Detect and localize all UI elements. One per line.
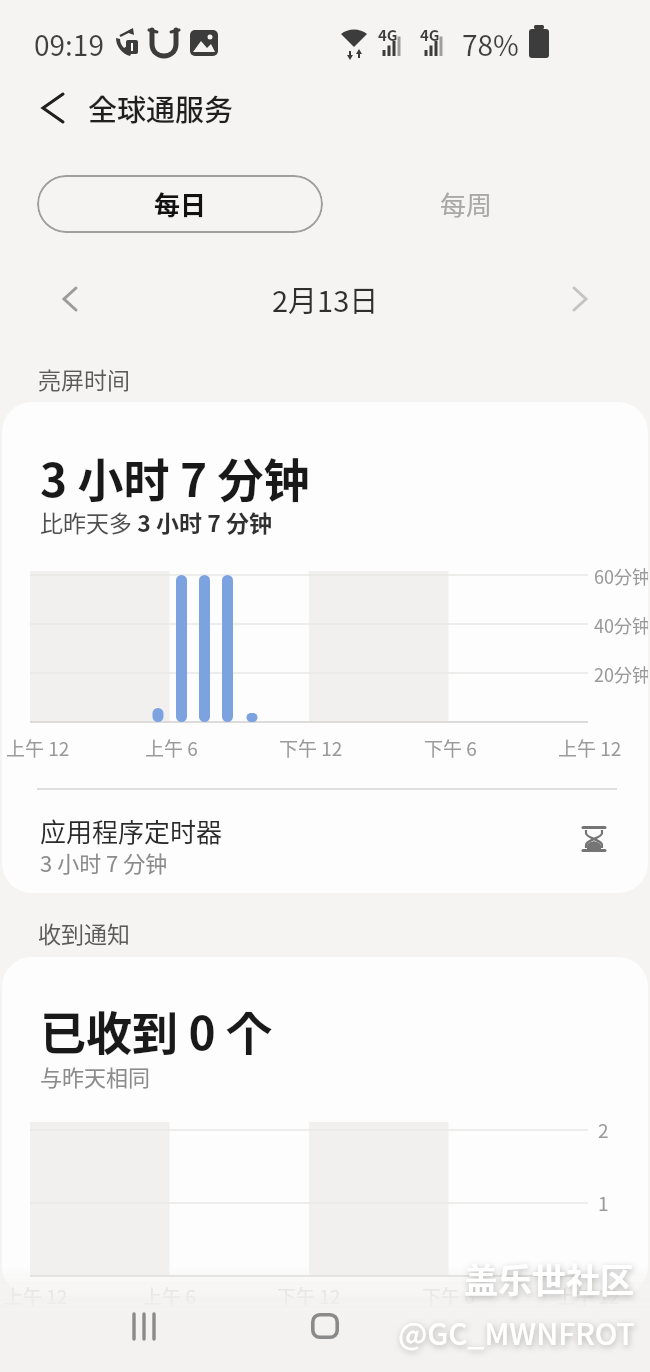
staticText: @GC_MWNFROT xyxy=(398,1310,635,1353)
button[interactable]: 每周 xyxy=(323,175,609,233)
staticText: 收到通知 xyxy=(38,916,130,949)
button[interactable] xyxy=(289,1294,361,1358)
staticText: 20分钟 xyxy=(594,661,648,687)
button[interactable]: 每日 xyxy=(37,175,323,233)
staticText: 每日 xyxy=(154,185,207,223)
staticText: 1 xyxy=(598,1189,609,1217)
staticText: 2月13日 xyxy=(272,278,379,320)
staticText: 亮屏时间 xyxy=(38,362,130,395)
staticText: 上午 12 xyxy=(4,1282,68,1310)
staticText: 下午 12 xyxy=(277,1282,341,1310)
button[interactable] xyxy=(469,1294,541,1358)
staticText: 下午 6 xyxy=(424,734,477,762)
staticText: 2 xyxy=(598,1116,609,1144)
staticText: 全球通服务 xyxy=(88,87,234,129)
staticText: 上午 6 xyxy=(145,734,198,762)
staticText: 下午 6 xyxy=(422,1282,475,1310)
staticText: 4G xyxy=(420,24,440,46)
staticText: 与昨天相同 xyxy=(40,1060,151,1092)
staticText: 78% xyxy=(462,24,519,65)
staticText: 上午 12 xyxy=(558,734,622,762)
staticText: 盖乐世社区 xyxy=(464,1254,634,1303)
button[interactable]: 应用程序定时器 xyxy=(2,790,648,893)
button[interactable] xyxy=(48,277,92,321)
staticText: 已收到 0 个 xyxy=(40,997,273,1064)
staticText: 3 小时 7 分钟 xyxy=(40,444,310,511)
staticText: 40分钟 xyxy=(594,612,648,638)
staticText: 09:19 xyxy=(34,24,104,65)
staticText: 4G xyxy=(378,24,398,46)
staticText: 上午 12 xyxy=(556,1282,620,1310)
staticText: 上午 6 xyxy=(143,1282,196,1310)
staticText: 3 小时 7 分钟 xyxy=(40,846,168,878)
staticText: 上午 12 xyxy=(6,734,70,762)
staticText: 下午 12 xyxy=(279,734,343,762)
staticText: 比昨天多 3 小时 7 分钟 xyxy=(40,505,272,538)
button[interactable] xyxy=(109,1294,181,1358)
staticText: 60分钟 xyxy=(594,563,648,589)
button[interactable] xyxy=(558,277,602,321)
button[interactable] xyxy=(30,86,74,130)
staticText: 每周 xyxy=(440,185,493,223)
staticText: 应用程序定时器 xyxy=(40,812,223,850)
